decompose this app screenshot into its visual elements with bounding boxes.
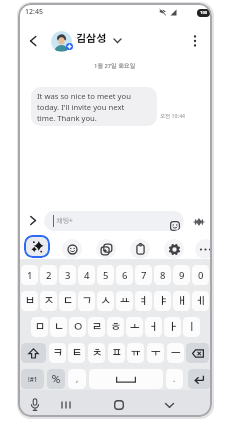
- button[interactable]: ㅗ: [126, 317, 143, 337]
- button[interactable]: ㅕ: [135, 291, 152, 311]
- button[interactable]: ㅁ: [31, 317, 48, 337]
- button[interactable]: ㅜ: [147, 343, 164, 363]
- staticText: 0: [198, 269, 204, 282]
- button[interactable]: [188, 369, 211, 389]
- staticText: ㅇ: [73, 322, 83, 332]
- staticText: ㅠ: [131, 348, 141, 358]
- button[interactable]: ㅑ: [154, 291, 171, 311]
- button[interactable]: ㄷ: [59, 291, 76, 311]
- staticText: ㅓ: [149, 322, 159, 332]
- staticText: ㅔ: [196, 296, 206, 306]
- staticText: ㅛ: [120, 296, 130, 306]
- staticText: ㅊ: [92, 348, 102, 358]
- button[interactable]: [190, 35, 200, 47]
- button[interactable]: ㄱ: [78, 291, 95, 311]
- button[interactable]: [21, 343, 46, 363]
- staticText: ,: [76, 373, 79, 385]
- button[interactable]: [47, 369, 65, 389]
- staticText: ㅋ: [53, 348, 63, 358]
- button[interactable]: ㅔ: [192, 291, 209, 311]
- button[interactable]: ㅅ: [97, 291, 114, 311]
- staticText: 채팅+: [56, 218, 73, 225]
- button[interactable]: [89, 369, 163, 389]
- staticText: ㅁ: [35, 322, 45, 332]
- button[interactable]: ㅛ: [116, 291, 133, 311]
- button[interactable]: [51, 31, 72, 52]
- staticText: ㄴ: [54, 322, 64, 332]
- staticText: ㅎ: [111, 322, 121, 332]
- staticText: ㅜ: [151, 348, 161, 358]
- button[interactable]: [96, 239, 116, 259]
- button[interactable]: 8: [154, 265, 171, 285]
- button[interactable]: 4: [78, 265, 95, 285]
- button[interactable]: 5: [97, 265, 114, 285]
- button[interactable]: ㅎ: [107, 317, 124, 337]
- button[interactable]: [29, 216, 37, 225]
- button[interactable]: ㅏ: [164, 317, 181, 337]
- staticText: ㅈ: [44, 296, 54, 306]
- button[interactable]: ㅐ: [173, 291, 190, 311]
- staticText: !#1: [28, 375, 38, 384]
- button[interactable]: [24, 235, 50, 258]
- button[interactable]: ㅍ: [108, 343, 125, 363]
- staticText: 100: [200, 10, 208, 16]
- button[interactable]: [60, 401, 72, 409]
- button[interactable]: ㅋ: [49, 343, 66, 363]
- staticText: 7: [141, 269, 147, 282]
- button[interactable]: 1: [21, 265, 38, 285]
- staticText: 5: [103, 269, 109, 282]
- button[interactable]: [29, 36, 38, 46]
- button[interactable]: ㅡ: [167, 343, 184, 363]
- staticText: ㄱ: [82, 296, 92, 306]
- staticText: ㅌ: [72, 348, 82, 358]
- button[interactable]: ㅠ: [127, 343, 144, 363]
- staticText: ㅅ: [101, 296, 111, 306]
- button[interactable]: ㅂ: [21, 291, 38, 311]
- button[interactable]: [62, 239, 82, 259]
- button[interactable]: ㅣ: [183, 317, 200, 337]
- button[interactable]: 3: [59, 265, 76, 285]
- staticText: ㅍ: [112, 348, 122, 358]
- staticText: ㄷ: [63, 296, 73, 306]
- staticText: 2: [46, 269, 52, 282]
- button[interactable]: [193, 216, 205, 228]
- button[interactable]: ㅈ: [40, 291, 57, 311]
- button[interactable]: 9: [173, 265, 190, 285]
- button[interactable]: [195, 239, 212, 259]
- button[interactable]: ㄹ: [88, 317, 105, 337]
- button[interactable]: ㅓ: [145, 317, 162, 337]
- button[interactable]: ㅇ: [69, 317, 86, 337]
- button[interactable]: 7: [135, 265, 152, 285]
- staticText: 9: [179, 269, 185, 282]
- button[interactable]: ㅊ: [88, 343, 105, 363]
- button[interactable]: ㅌ: [68, 343, 85, 363]
- button[interactable]: .: [166, 369, 183, 389]
- button[interactable]: It was so nice to meet you today. I'll i…: [31, 87, 157, 126]
- button[interactable]: [130, 239, 150, 259]
- button[interactable]: [114, 400, 124, 410]
- button[interactable]: [29, 398, 41, 412]
- button[interactable]: 채팅+: [44, 211, 184, 231]
- staticText: ㅣ: [187, 322, 197, 332]
- staticText: It was so nice to meet you today. I'll i…: [37, 91, 131, 124]
- button[interactable]: [186, 343, 209, 363]
- button[interactable]: !#1: [21, 369, 44, 389]
- staticText: 8: [160, 269, 166, 282]
- staticText: 6: [122, 269, 128, 282]
- staticText: 12:45: [25, 7, 43, 17]
- button[interactable]: ㄴ: [50, 317, 67, 337]
- staticText: ㅂ: [25, 296, 35, 306]
- button[interactable]: [164, 402, 175, 409]
- button[interactable]: [164, 239, 184, 259]
- staticText: 1월 27일 화요일: [94, 63, 136, 69]
- button[interactable]: 0: [192, 265, 209, 285]
- staticText: 3: [65, 269, 71, 282]
- staticText: 1: [27, 269, 33, 282]
- staticText: ㅡ: [171, 348, 181, 358]
- staticText: ㅑ: [158, 296, 168, 306]
- button[interactable]: 2: [40, 265, 57, 285]
- button[interactable]: ,: [68, 369, 86, 389]
- button[interactable]: 6: [116, 265, 133, 285]
- button[interactable]: 김삼성: [76, 34, 107, 44]
- staticText: ㅐ: [177, 296, 187, 306]
